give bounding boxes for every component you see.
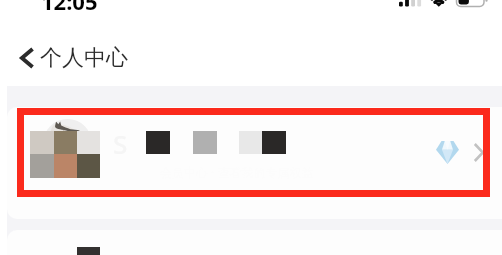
staticText: S: [113, 126, 128, 161]
button[interactable]: Back: [16, 44, 128, 72]
other: More: [473, 144, 485, 161]
staticText: 12:05: [41, 0, 98, 16]
other: Back: [16, 46, 34, 70]
staticText: 个人中心: [40, 44, 128, 72]
button[interactable]: S: [7, 107, 502, 219]
button[interactable]: [7, 230, 502, 255]
other: Member level: [436, 141, 459, 164]
